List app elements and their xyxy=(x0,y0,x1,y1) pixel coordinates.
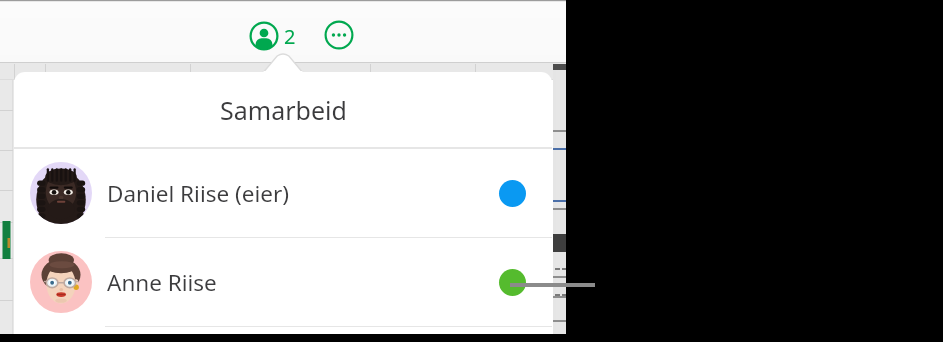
staticText: Daniel Riise (eier) xyxy=(107,178,290,209)
staticText: Samarbeid xyxy=(220,93,347,127)
button[interactable]: Samarbeid – 2 deltakere xyxy=(249,19,296,53)
button[interactable]: Mer xyxy=(324,20,354,50)
staticText: 2 xyxy=(284,23,296,50)
button[interactable]: Daniel Riise (eier) xyxy=(14,149,552,237)
staticText: Anne Riise xyxy=(107,267,217,298)
button[interactable]: Anne Riise xyxy=(14,238,552,326)
